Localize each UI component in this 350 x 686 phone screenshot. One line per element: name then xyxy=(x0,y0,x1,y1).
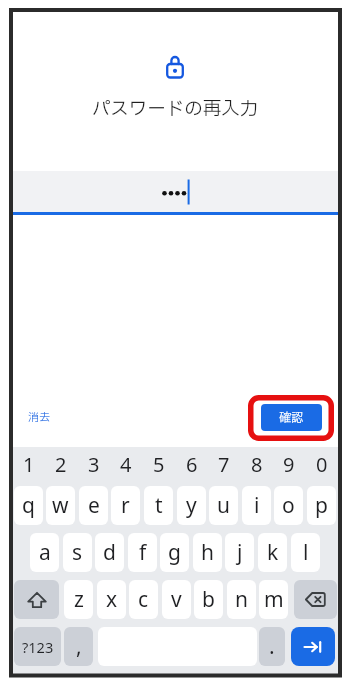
staticText: k xyxy=(267,538,279,567)
staticText: 5 xyxy=(153,451,165,478)
staticText: 消去 xyxy=(28,409,50,426)
button[interactable]: n xyxy=(227,580,256,619)
button[interactable]: c xyxy=(129,580,158,619)
staticText: d xyxy=(103,538,116,567)
button[interactable]: j xyxy=(225,533,254,572)
button[interactable]: p xyxy=(307,486,336,525)
button[interactable]: 5 xyxy=(144,447,173,482)
staticText: 0 xyxy=(316,451,328,478)
staticText: 1 xyxy=(23,451,35,478)
staticText: w xyxy=(52,491,69,520)
staticText: 7 xyxy=(218,451,230,478)
staticText: u xyxy=(217,491,230,520)
button[interactable]: 1 xyxy=(14,447,43,482)
button[interactable]: g xyxy=(160,533,189,572)
button[interactable]: b xyxy=(194,580,223,619)
staticText: l xyxy=(303,538,309,567)
staticText: , xyxy=(76,632,82,661)
button[interactable]: q xyxy=(14,486,43,525)
button[interactable]: e xyxy=(79,486,108,525)
staticText: r xyxy=(121,491,130,520)
staticText: . xyxy=(269,632,275,661)
button[interactable]: 3 xyxy=(79,447,108,482)
button[interactable]: u xyxy=(209,486,238,525)
button[interactable]: 0 xyxy=(307,447,336,482)
button[interactable]: h xyxy=(193,533,222,572)
staticText: z xyxy=(74,585,84,614)
button[interactable]: r xyxy=(111,486,140,525)
button[interactable]: 消去 xyxy=(22,403,56,432)
staticText: e xyxy=(88,491,100,520)
button[interactable]: f xyxy=(128,533,157,572)
staticText: h xyxy=(201,538,214,567)
staticText: f xyxy=(139,538,147,567)
staticText: s xyxy=(72,538,83,567)
staticText: p xyxy=(315,491,328,520)
staticText: 4 xyxy=(120,451,132,478)
staticText: x xyxy=(106,585,118,614)
button[interactable] xyxy=(14,580,59,619)
staticText: j xyxy=(237,538,243,567)
button[interactable]: 2 xyxy=(46,447,75,482)
button[interactable]: i xyxy=(242,486,271,525)
staticText: m xyxy=(264,585,284,614)
button[interactable]: ?123 xyxy=(14,627,61,666)
button[interactable]: , xyxy=(64,627,93,666)
button[interactable]: m xyxy=(259,580,288,619)
button[interactable]: l xyxy=(291,533,320,572)
staticText: 8 xyxy=(251,451,263,478)
staticText: c xyxy=(138,585,149,614)
button[interactable]: . xyxy=(259,627,285,666)
staticText: b xyxy=(202,585,215,614)
button[interactable]: v xyxy=(162,580,191,619)
staticText: 2 xyxy=(55,451,67,478)
button[interactable]: x xyxy=(97,580,126,619)
staticText: t xyxy=(155,491,163,520)
button[interactable] xyxy=(13,171,338,212)
button[interactable]: t xyxy=(144,486,173,525)
staticText: パスワードの再入力 xyxy=(0,95,350,123)
staticText: o xyxy=(282,491,295,520)
button[interactable]: d xyxy=(95,533,124,572)
button[interactable]: 4 xyxy=(111,447,140,482)
button[interactable]: w xyxy=(46,486,75,525)
button[interactable]: y xyxy=(177,486,206,525)
button[interactable]: a xyxy=(30,533,59,572)
staticText: y xyxy=(186,491,197,520)
staticText: ?123 xyxy=(22,637,54,657)
staticText: 確認 xyxy=(279,409,304,427)
button[interactable]: o xyxy=(274,486,303,525)
button[interactable]: s xyxy=(63,533,92,572)
staticText: i xyxy=(254,491,260,520)
button[interactable]: 7 xyxy=(209,447,238,482)
button[interactable] xyxy=(294,580,337,619)
button[interactable]: 8 xyxy=(242,447,271,482)
staticText: 6 xyxy=(186,451,198,478)
button[interactable]: 確認 xyxy=(261,404,322,431)
button[interactable] xyxy=(291,627,335,666)
button[interactable]: k xyxy=(258,533,287,572)
staticText: q xyxy=(22,491,35,520)
staticText: g xyxy=(168,538,181,567)
button[interactable]: z xyxy=(64,580,93,619)
button[interactable]: 9 xyxy=(274,447,303,482)
staticText: 9 xyxy=(283,451,295,478)
staticText: n xyxy=(235,585,248,614)
staticText: a xyxy=(39,538,51,567)
button[interactable]: 6 xyxy=(177,447,206,482)
staticText: v xyxy=(171,585,182,614)
staticText: 3 xyxy=(88,451,100,478)
